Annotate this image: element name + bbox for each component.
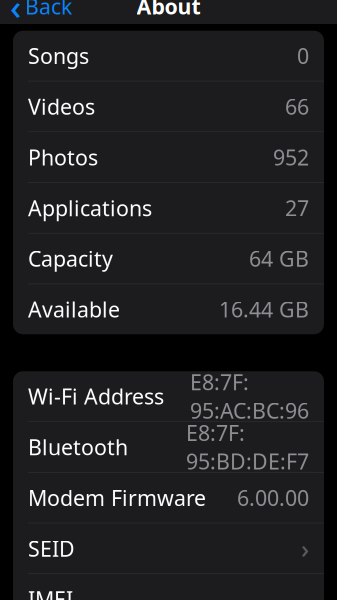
staticText: Songs	[28, 42, 89, 70]
staticText: E8:7F:95:AC:BC:96	[190, 368, 309, 425]
staticText: Wi-Fi Address	[28, 382, 164, 410]
button[interactable]: Photos	[13, 132, 324, 183]
staticText: 27	[285, 194, 309, 222]
staticText: E8:7F:95:BD:DE:F7	[186, 419, 309, 475]
staticText: 66	[285, 92, 309, 121]
button[interactable]: Bluetooth	[13, 422, 324, 473]
staticText: Photos	[28, 143, 98, 171]
button[interactable]: Videos	[13, 81, 324, 132]
button[interactable]: SEID	[13, 523, 324, 574]
button[interactable]: Available	[13, 284, 324, 334]
staticText: IMEI	[28, 585, 73, 600]
staticText: About	[136, 0, 200, 20]
staticText: 0	[297, 42, 309, 70]
staticText: ›	[301, 531, 309, 565]
staticText: Modem Firmware	[28, 483, 206, 512]
staticText: Videos	[28, 92, 95, 121]
staticText: Back	[25, 0, 72, 20]
button[interactable]: Modem Firmware	[13, 473, 324, 523]
button[interactable]: IMEI	[13, 574, 324, 600]
staticText: Available	[28, 295, 120, 323]
staticText: Bluetooth	[28, 433, 128, 461]
button[interactable]: Songs	[13, 31, 324, 81]
staticText: SEID	[28, 534, 75, 562]
staticText: 6.00.00	[237, 483, 309, 512]
button[interactable]: Wi-Fi Address	[13, 371, 324, 422]
button[interactable]: Applications	[13, 183, 324, 234]
staticText: 64 GB	[249, 244, 309, 273]
staticText: 16.44 GB	[219, 295, 309, 323]
staticText: Capacity	[28, 244, 113, 273]
staticText: 952	[273, 143, 309, 171]
staticText: ‹	[10, 0, 21, 29]
button[interactable]: Capacity	[13, 234, 324, 284]
button[interactable]: ‹	[2, 0, 80, 23]
staticText: Applications	[28, 194, 152, 222]
